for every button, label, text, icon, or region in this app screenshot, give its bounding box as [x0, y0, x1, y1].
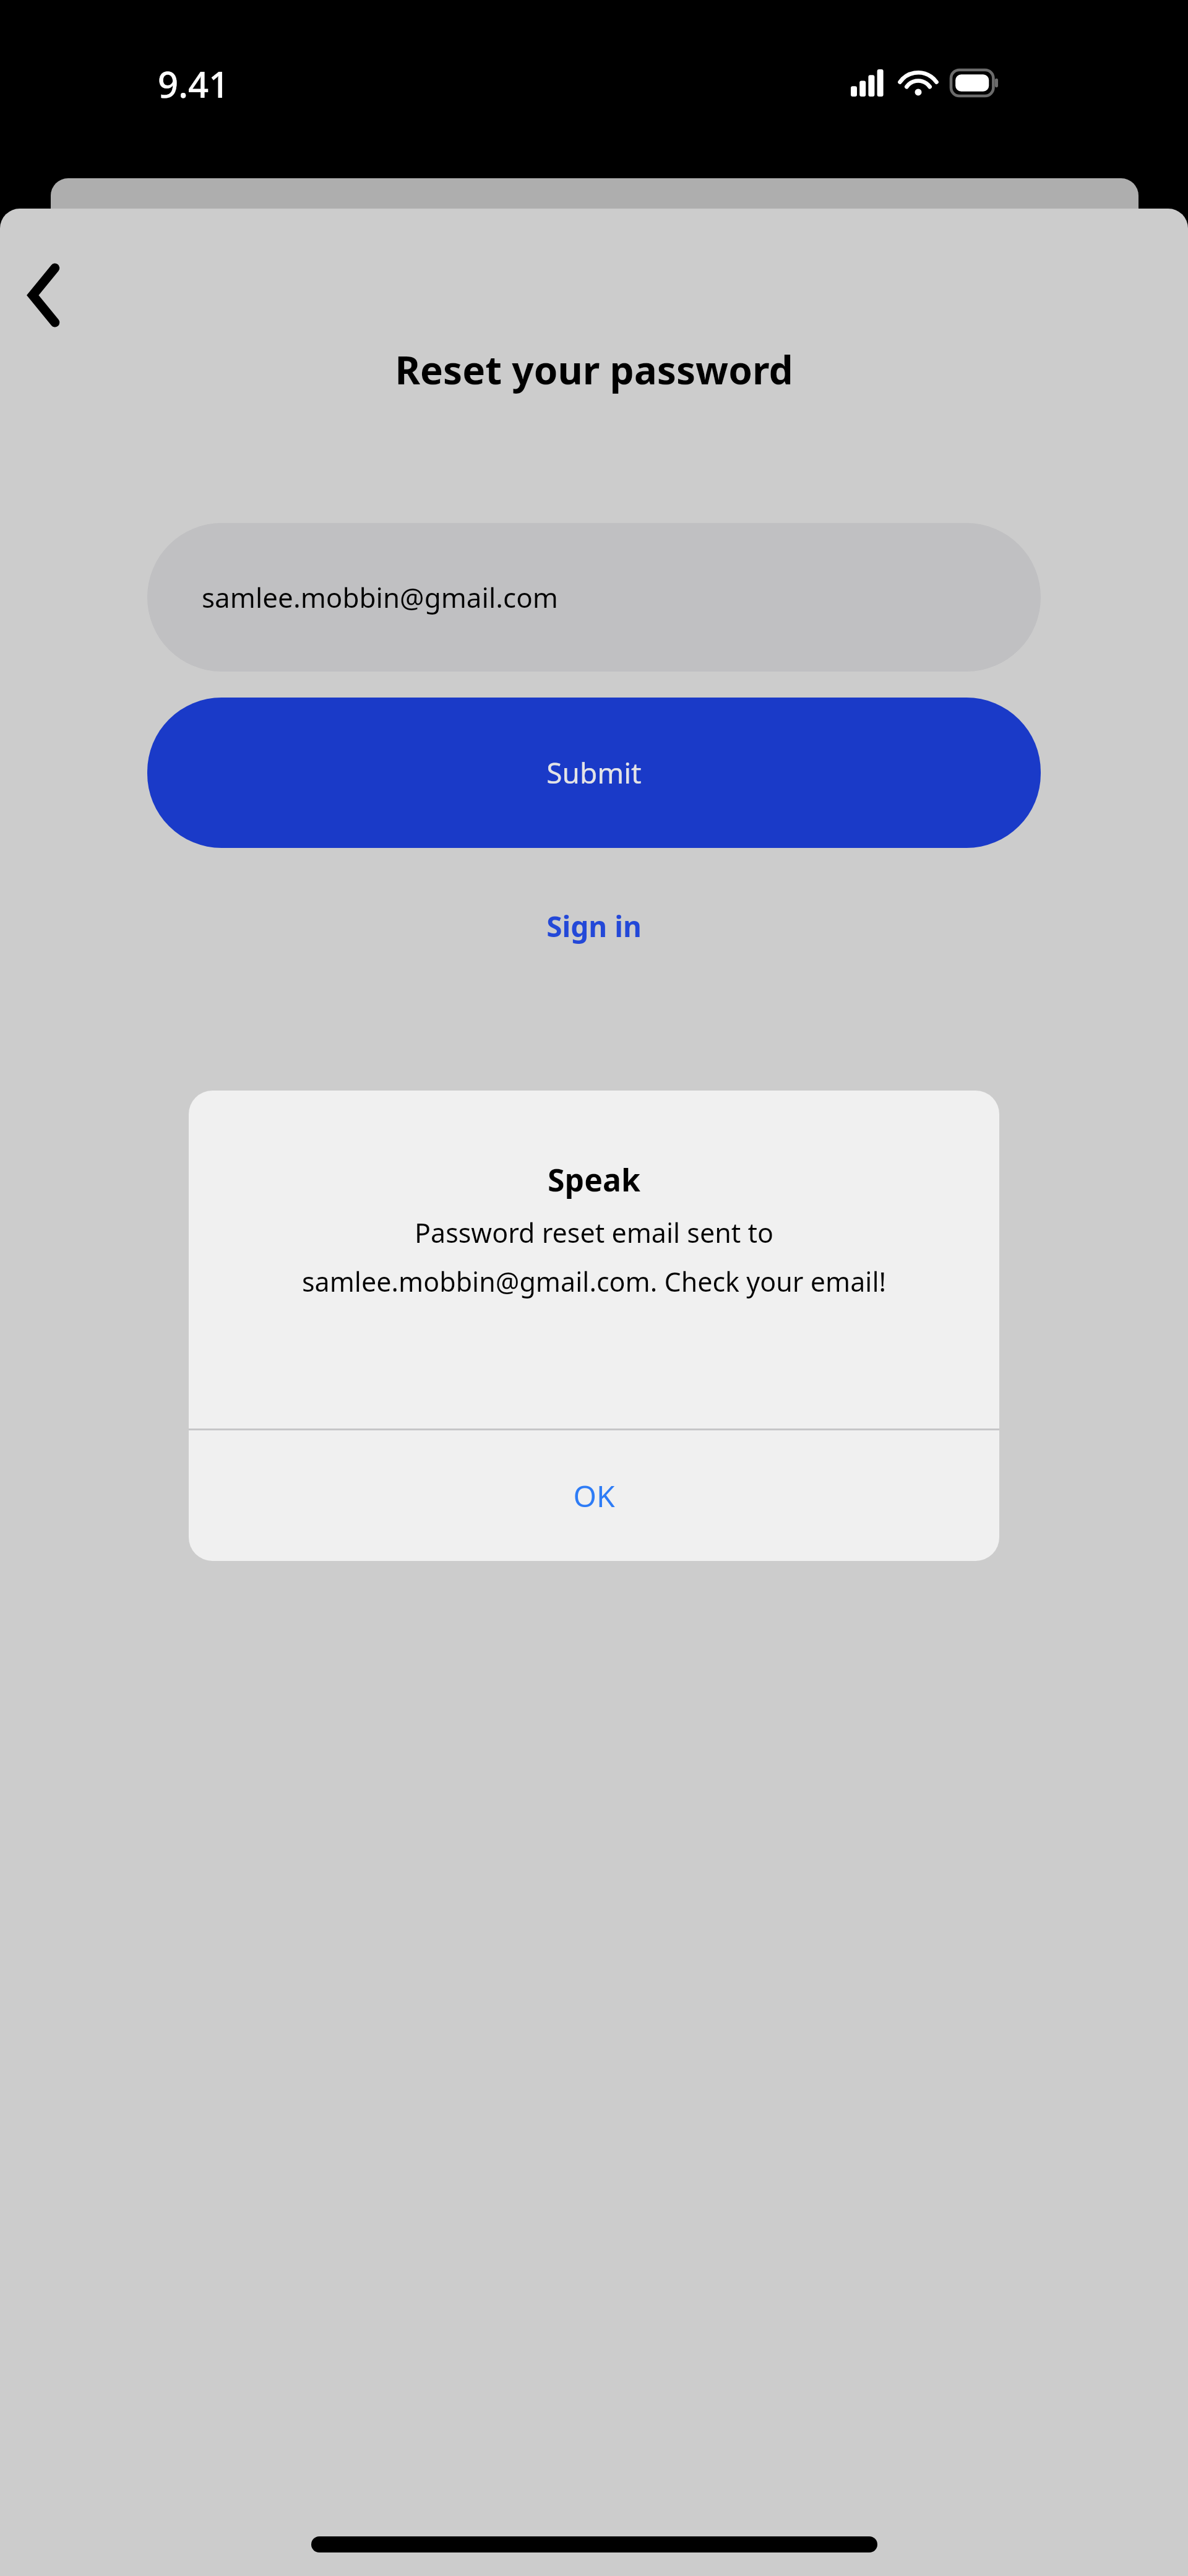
- staticText: Speak: [189, 1159, 999, 1201]
- staticText: 9.41: [158, 59, 230, 108]
- staticText: OK: [573, 1476, 615, 1516]
- button[interactable]: OK: [189, 1430, 999, 1561]
- staticText: Sign in: [546, 907, 642, 946]
- staticText: Reset your password: [395, 344, 793, 395]
- staticText: Password reset email sent to samlee.mobb…: [265, 1214, 923, 1300]
- button[interactable]: Back: [7, 258, 82, 332]
- button[interactable]: samlee.mobbin@gmail.com: [147, 523, 1041, 672]
- button[interactable]: Sign in: [522, 894, 666, 958]
- button[interactable]: Submit: [147, 698, 1041, 848]
- staticText: samlee.mobbin@gmail.com: [202, 579, 558, 616]
- staticText: Submit: [546, 753, 642, 792]
